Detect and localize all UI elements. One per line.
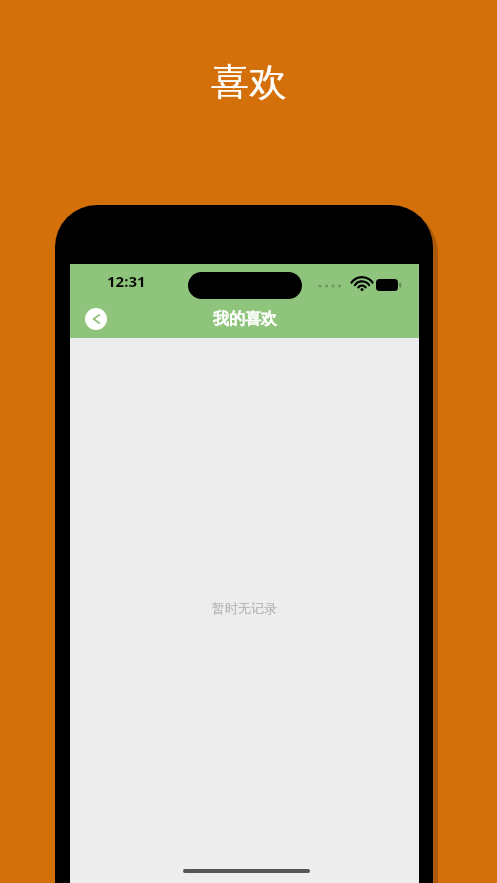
staticText: 暂时无记录 <box>212 600 277 616</box>
button[interactable]: Back <box>85 308 107 330</box>
staticText: 我的喜欢 <box>213 309 277 329</box>
staticText: 喜欢 <box>211 58 287 106</box>
staticText: 12:31 <box>107 271 146 291</box>
